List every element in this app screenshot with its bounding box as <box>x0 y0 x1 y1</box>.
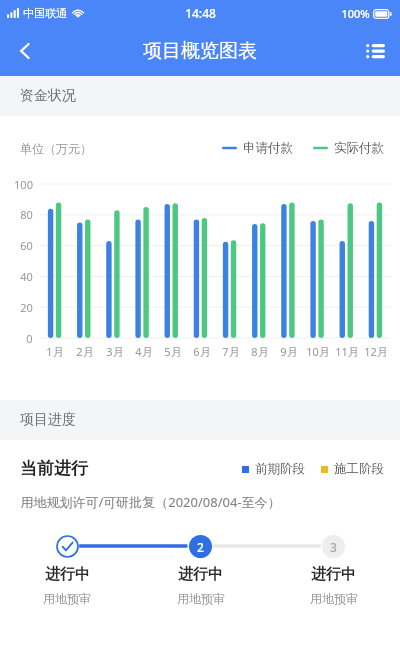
staticText: 20 <box>20 300 33 315</box>
staticText: 项目概览图表 <box>143 39 257 63</box>
staticText: 资金状况 <box>20 87 76 105</box>
staticText: 1月 <box>46 344 64 359</box>
staticText: 2 <box>197 539 204 555</box>
staticText: 4月 <box>135 344 153 359</box>
staticText: 当前进行 <box>20 458 88 479</box>
staticText: 100 <box>14 177 33 192</box>
staticText: 80 <box>20 207 33 222</box>
staticText: 2月 <box>76 344 94 359</box>
staticText: 用地预审 <box>177 591 225 606</box>
staticText: 3月 <box>106 344 124 359</box>
staticText: 0 <box>26 331 33 346</box>
staticText: 11月 <box>335 344 359 359</box>
staticText: 8月 <box>251 344 269 359</box>
staticText: 7月 <box>222 344 240 359</box>
staticText: 3 <box>330 539 337 555</box>
staticText: 施工阶段 <box>334 461 384 477</box>
staticText: 实际付款 <box>334 140 384 156</box>
staticText: 9月 <box>280 344 298 359</box>
staticText: 进行中 <box>45 565 90 584</box>
button[interactable]: Step 1 complete <box>56 535 79 558</box>
staticText: 中国联通 <box>23 6 67 20</box>
staticText: 前期阶段 <box>255 461 305 477</box>
staticText: 进行中 <box>178 565 223 584</box>
button[interactable]: Back <box>0 26 50 76</box>
staticText: 40 <box>20 269 33 284</box>
staticText: 14:48 <box>185 5 216 21</box>
staticText: 进行中 <box>311 565 356 584</box>
button[interactable]: Step 2 <box>189 535 212 558</box>
staticText: 用地预审 <box>310 591 358 606</box>
staticText: 申请付款 <box>243 140 293 156</box>
staticText: 6月 <box>193 344 211 359</box>
button[interactable]: List view <box>350 26 400 76</box>
staticText: 12月 <box>364 344 388 359</box>
staticText: 项目进度 <box>20 411 76 429</box>
button[interactable]: Step 3 <box>322 535 345 558</box>
staticText: 60 <box>20 238 33 253</box>
staticText: 用地预审 <box>43 591 91 606</box>
staticText: 10月 <box>306 344 330 359</box>
staticText: 100% <box>341 6 370 21</box>
staticText: 5月 <box>164 344 182 359</box>
staticText: 用地规划许可/可研批复（2020/08/04-至今） <box>20 493 281 511</box>
staticText: 单位（万元） <box>20 141 92 156</box>
